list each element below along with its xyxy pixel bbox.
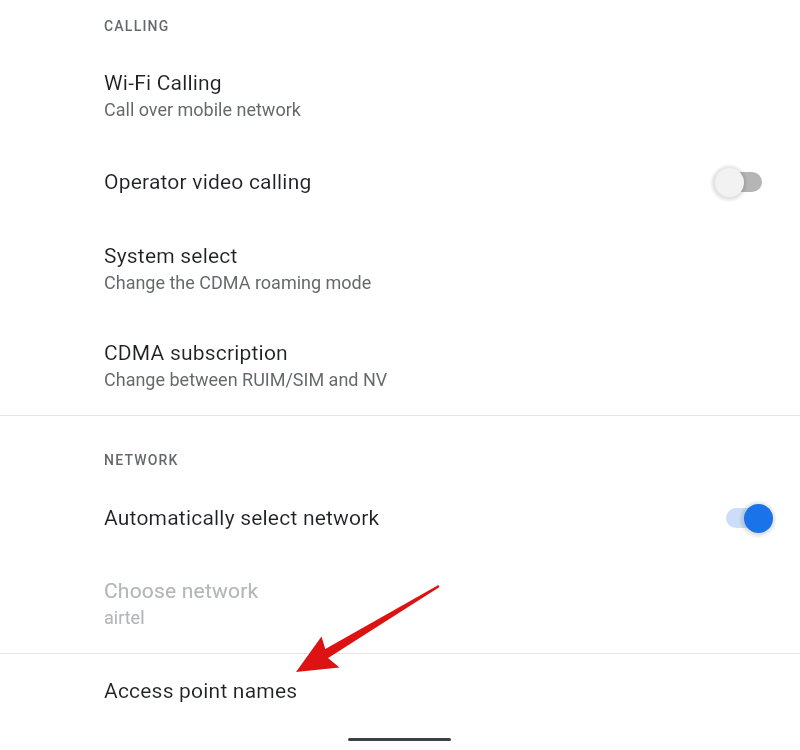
button[interactable]: CDMA subscription [0, 332, 800, 404]
staticText: airtel [104, 607, 145, 628]
staticText: System select [104, 244, 238, 269]
button[interactable]: Operator video calling toggle [714, 166, 772, 198]
staticText: Call over mobile network [104, 99, 301, 120]
button[interactable]: System select [0, 235, 800, 307]
staticText: Automatically select network [104, 506, 742, 531]
staticText: Change between RUIM/SIM and NV [104, 369, 388, 390]
staticText: Wi-Fi Calling [104, 71, 222, 96]
button[interactable]: Operator video calling [0, 151, 800, 213]
staticText: CDMA subscription [104, 341, 288, 366]
button[interactable]: Automatically select network toggle [714, 502, 772, 534]
staticText: Access point names [104, 679, 298, 704]
staticText: NETWORK [104, 452, 179, 468]
staticText: Change the CDMA roaming mode [104, 272, 372, 293]
staticText: Choose network [104, 579, 259, 604]
button[interactable]: Access point names [0, 654, 800, 728]
button[interactable]: Wi-Fi Calling [0, 62, 800, 134]
button[interactable]: Automatically select network [0, 487, 800, 549]
staticText: CALLING [104, 18, 170, 34]
staticText: Operator video calling [104, 170, 742, 195]
